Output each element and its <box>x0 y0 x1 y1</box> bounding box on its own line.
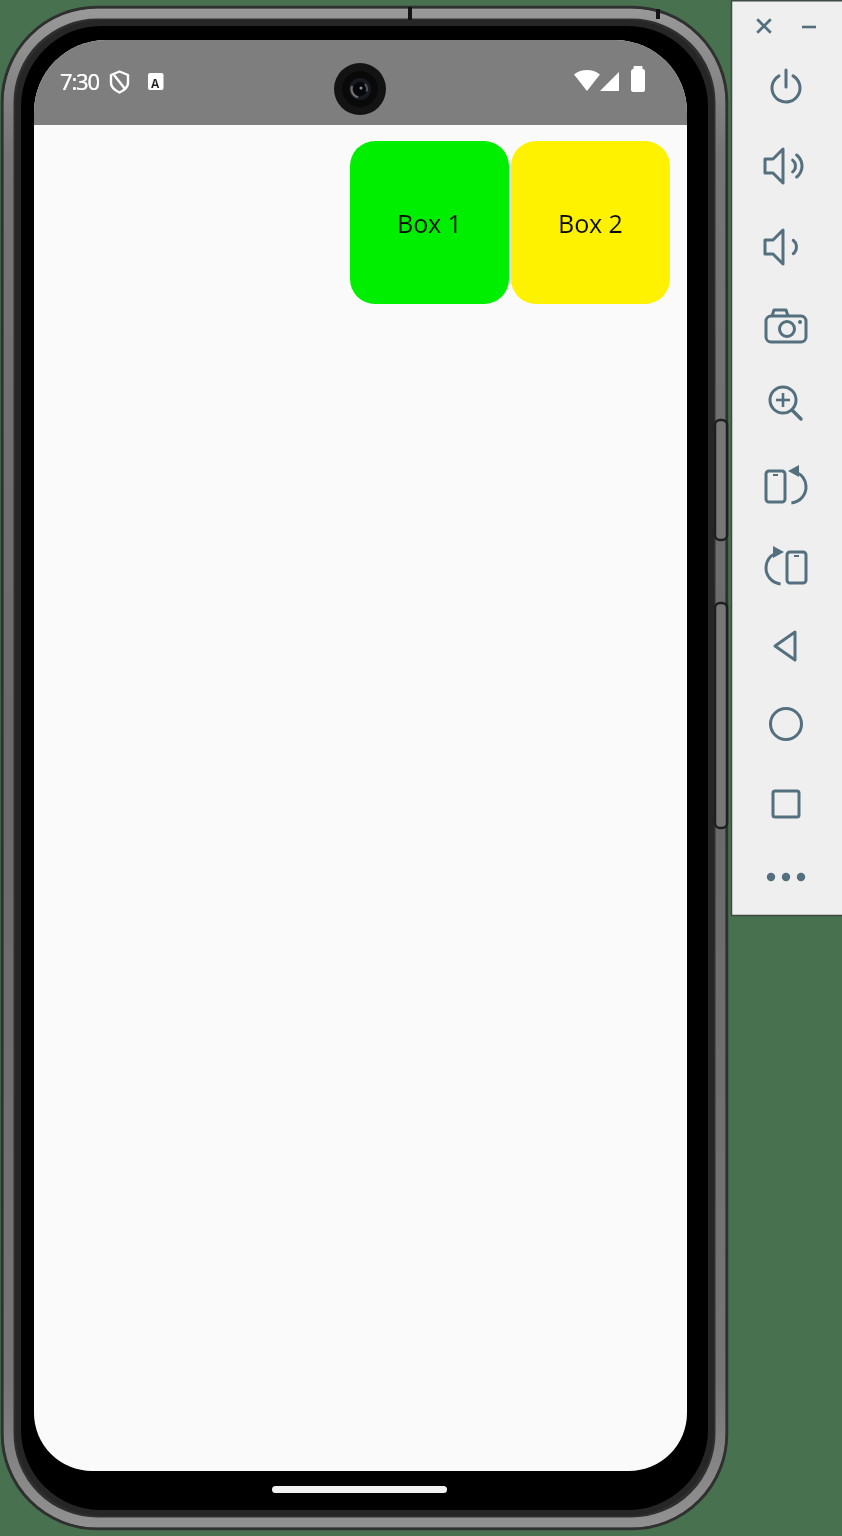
button[interactable] <box>762 223 810 271</box>
button[interactable]: Box 2 <box>511 141 670 304</box>
staticText: 7:30 <box>60 66 99 96</box>
button[interactable]: Box 1 <box>350 141 509 304</box>
button[interactable] <box>740 4 788 52</box>
button[interactable] <box>762 463 810 511</box>
button[interactable] <box>762 853 810 901</box>
button[interactable] <box>762 142 810 190</box>
button[interactable] <box>762 622 810 670</box>
button[interactable] <box>762 64 810 112</box>
button[interactable] <box>762 303 810 351</box>
button[interactable] <box>762 544 810 592</box>
button[interactable] <box>762 700 810 748</box>
button[interactable] <box>762 780 810 828</box>
staticText: Box 1 <box>397 206 462 240</box>
button[interactable] <box>762 381 810 429</box>
staticText: Box 2 <box>558 206 623 240</box>
staticText: A <box>151 75 160 91</box>
button[interactable] <box>785 4 833 52</box>
